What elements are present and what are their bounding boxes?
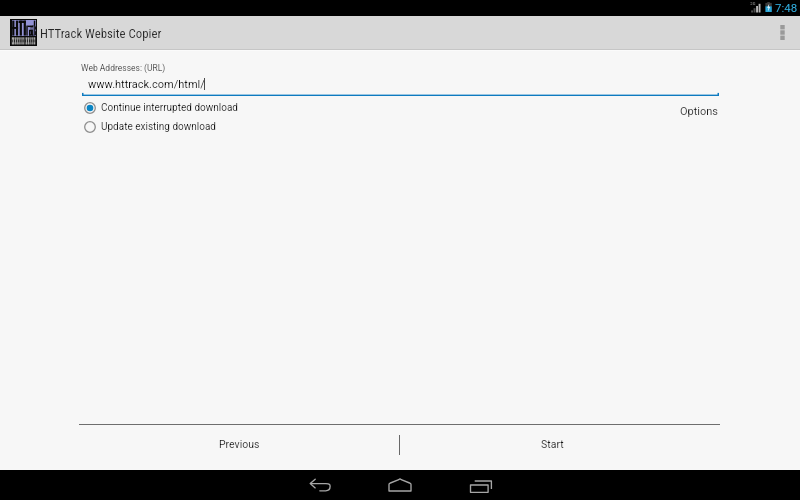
button[interactable]: More options [769, 16, 795, 49]
staticText: Web Addresses: (URL) [81, 63, 166, 73]
staticText: Options [680, 105, 719, 118]
staticText: Update existing download [101, 121, 217, 133]
staticText: Continue interrupted download [101, 102, 238, 114]
staticText: Previous [219, 438, 260, 450]
staticText: Start [541, 438, 564, 450]
button[interactable]: Web address input [82, 75, 719, 95]
button[interactable]: Start [400, 429, 705, 459]
staticText: www.httrack.com/html/ [88, 78, 205, 91]
button[interactable]: Update existing download [82, 118, 217, 136]
staticText: HTTrack Website Copier [40, 26, 162, 41]
button[interactable]: Back [292, 470, 348, 500]
staticText: 7:48 [775, 1, 798, 14]
button[interactable]: Previous [79, 429, 399, 459]
button[interactable]: Continue interrupted download [82, 99, 238, 117]
button[interactable]: Home [372, 470, 428, 500]
button[interactable]: Options [666, 99, 732, 123]
button[interactable]: Recents [454, 470, 510, 500]
